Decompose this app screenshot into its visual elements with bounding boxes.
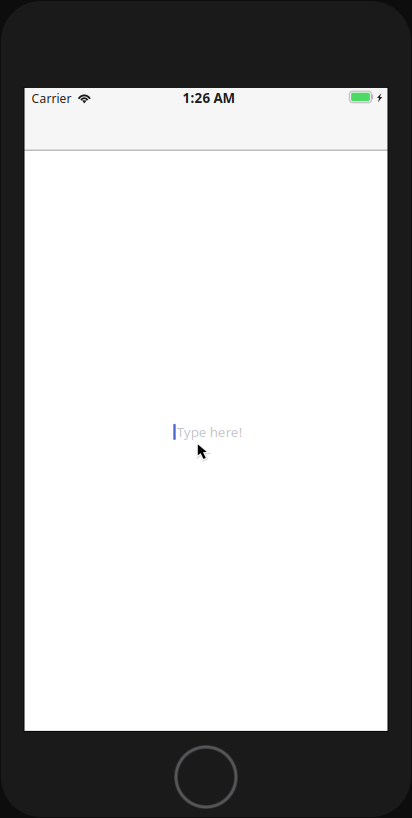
staticText: Carrier [31,90,71,106]
button[interactable]: Type here! [148,422,268,442]
staticText: Type here! [177,423,243,441]
staticText: 1:26 AM [182,89,235,107]
